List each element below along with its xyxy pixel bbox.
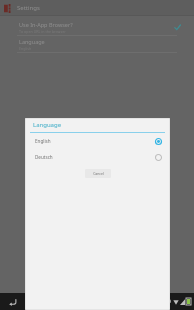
staticText: Language <box>33 121 62 129</box>
button[interactable]: Cancel <box>85 169 111 178</box>
staticText: Cancel <box>93 171 104 176</box>
button[interactable]: Deutsch <box>25 149 170 165</box>
staticText: Settings <box>17 4 40 12</box>
staticText: Deutsch <box>35 154 155 160</box>
staticText: Language <box>19 38 45 45</box>
staticText: 13:39 <box>154 297 171 306</box>
staticText: English <box>35 138 155 144</box>
button[interactable]: Back <box>6 295 19 308</box>
other: Enabled <box>173 23 182 32</box>
button[interactable]: App icon <box>3 3 13 13</box>
staticText: Use In-App Browser? <box>19 21 73 28</box>
staticText: English <box>19 46 32 51</box>
staticText: Tо open URL in the browser <box>19 29 66 34</box>
button[interactable]: Use In-App Browser? <box>0 19 194 35</box>
button[interactable]: English <box>25 133 170 149</box>
button[interactable]: System status <box>134 297 191 306</box>
